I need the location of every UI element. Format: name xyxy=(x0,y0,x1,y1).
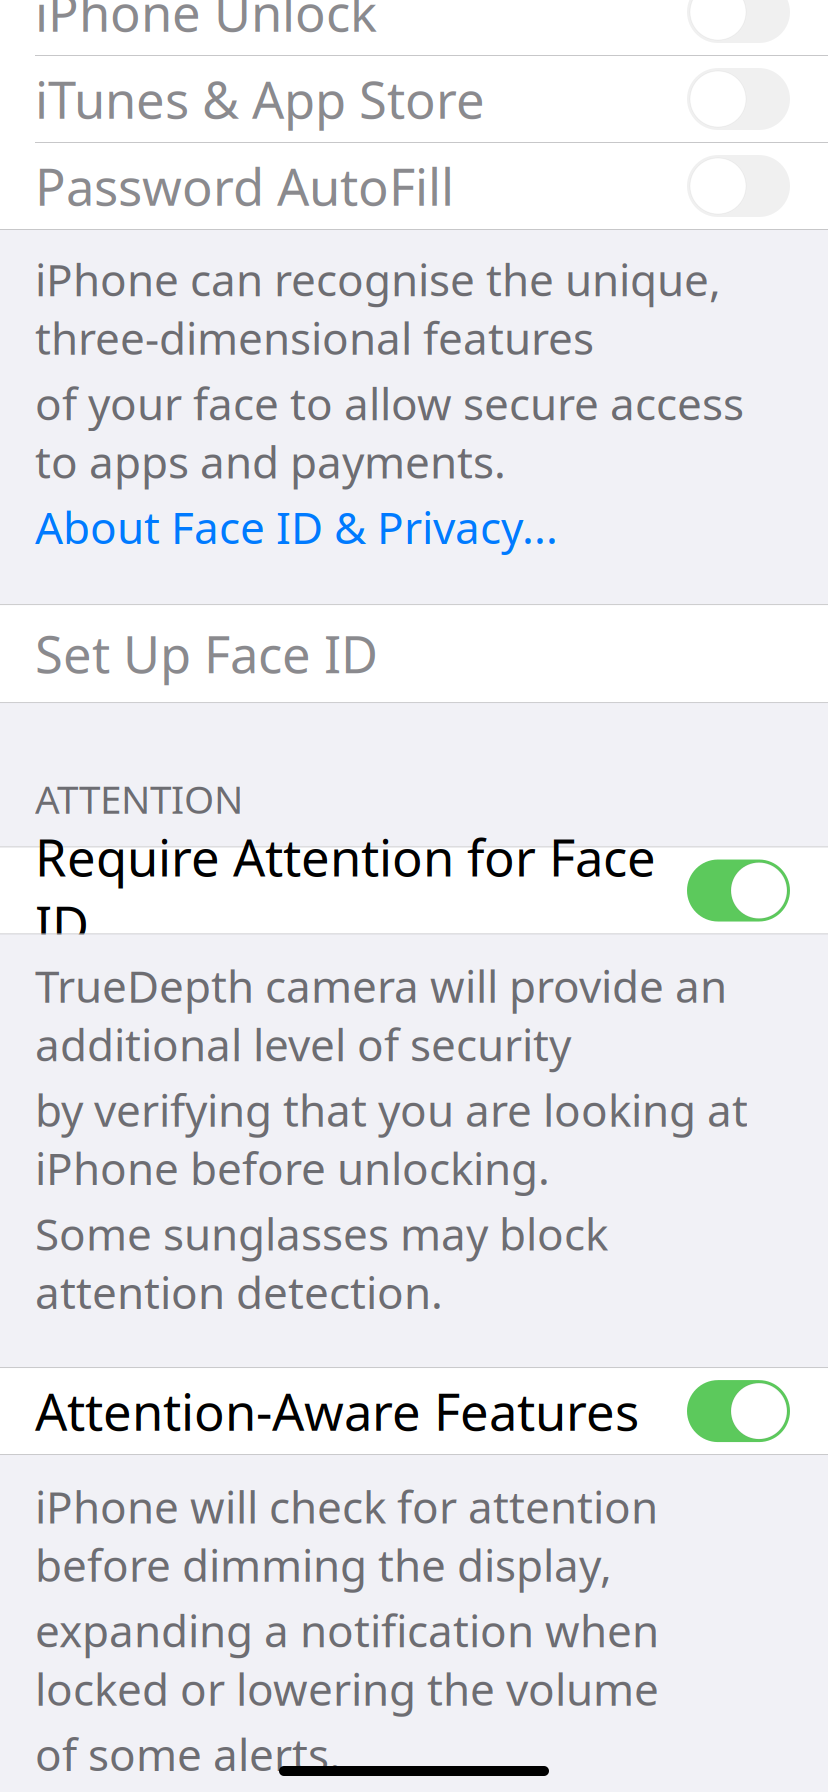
staticText: expanding a notification when locked or … xyxy=(35,1601,659,1718)
staticText: Require Attention for Face ID xyxy=(35,823,656,958)
button[interactable]: Require Attention for Face ID xyxy=(0,847,828,933)
staticText: of some alerts. xyxy=(35,1725,341,1783)
staticText: Attention-Aware Features xyxy=(35,1377,639,1445)
button[interactable]: iTunes & App Store xyxy=(0,56,828,142)
staticText: iTunes & App Store xyxy=(35,65,485,133)
staticText: About Face ID & Privacy... xyxy=(35,498,558,556)
staticText: iPhone Unlock xyxy=(35,0,377,46)
staticText: Password AutoFill xyxy=(35,152,454,220)
staticText: iPhone will check for attention before d… xyxy=(35,1477,658,1594)
button[interactable]: Set Up Face ID xyxy=(0,605,828,702)
staticText: of your face to allow secure access to a… xyxy=(35,374,744,491)
staticText: iPhone can recognise the unique, three-d… xyxy=(35,250,721,367)
staticText: by verifying that you are looking at iPh… xyxy=(35,1080,748,1197)
button[interactable]: Password AutoFill xyxy=(0,143,828,229)
staticText: Some sunglasses may block attention dete… xyxy=(35,1204,608,1321)
staticText: ATTENTION xyxy=(35,773,243,824)
staticText: Set Up Face ID xyxy=(35,620,378,687)
button[interactable]: iPhone Unlock xyxy=(0,0,828,55)
button[interactable]: About Face ID & Privacy... xyxy=(35,491,798,556)
staticText: TrueDepth camera will provide an additio… xyxy=(35,956,727,1073)
button[interactable]: Attention-Aware Features xyxy=(0,1368,828,1454)
